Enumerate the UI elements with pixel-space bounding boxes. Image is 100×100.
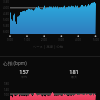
- staticText: 140: [0, 88, 9, 93]
- staticText: 平均: [0, 75, 48, 80]
- button[interactable]: ペース | 高度 | 心拍: [30, 44, 66, 49]
- staticText: 157: [0, 68, 48, 77]
- staticText: 5:30: [0, 24, 9, 29]
- button[interactable]: 181: [50, 68, 98, 79]
- staticText: 4:00: [0, 6, 9, 11]
- staticText: 5.00: [90, 38, 100, 43]
- button[interactable]: 157: [0, 68, 48, 79]
- staticText: 181: [50, 68, 98, 77]
- staticText: 最大: [50, 75, 98, 80]
- staticText: 100: [0, 93, 9, 98]
- staticText: 6:00: [0, 30, 9, 35]
- staticText: 1.00: [21, 38, 33, 43]
- staticText: 4.00: [72, 38, 84, 43]
- staticText: 0.00: [4, 38, 16, 43]
- staticText: 4:30: [0, 12, 9, 17]
- staticText: 180: [0, 82, 9, 87]
- staticText: ペース | 高度 | 心拍: [30, 44, 66, 49]
- staticText: 5:00: [0, 18, 9, 23]
- staticText: 3:30: [0, 0, 9, 5]
- staticText: 3.00: [55, 38, 67, 43]
- staticText: 2.00: [38, 38, 50, 43]
- staticText: 心拍 (bpm): [3, 60, 27, 66]
